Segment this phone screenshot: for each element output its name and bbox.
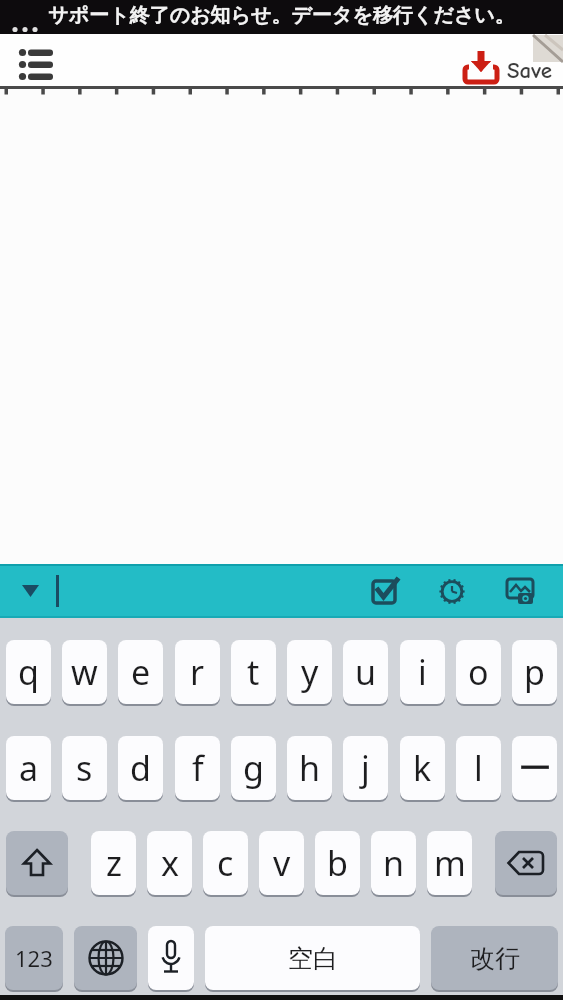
button[interactable] <box>22 584 40 598</box>
button[interactable]: u <box>343 640 388 704</box>
button[interactable]: e <box>118 640 163 704</box>
button[interactable] <box>495 831 557 895</box>
button[interactable]: q <box>6 640 51 704</box>
staticText: 改行 <box>470 943 520 974</box>
button[interactable]: t <box>231 640 276 704</box>
button[interactable]: b <box>315 831 360 895</box>
staticText: 空白 <box>288 943 338 974</box>
staticText: Save <box>507 57 552 83</box>
staticText: v <box>273 840 291 886</box>
staticText: w <box>71 649 98 695</box>
button[interactable] <box>18 46 56 78</box>
button[interactable]: サポート終了のお知らせ。データを移行ください。 <box>0 0 563 34</box>
staticText: p <box>524 649 545 695</box>
button[interactable] <box>505 578 535 604</box>
staticText: ー <box>518 747 552 790</box>
staticText: r <box>190 649 205 695</box>
button[interactable]: g <box>231 736 276 800</box>
button[interactable]: ー <box>512 736 557 800</box>
staticText: u <box>355 649 377 695</box>
button[interactable]: o <box>456 640 501 704</box>
staticText: f <box>192 745 204 791</box>
staticText: o <box>468 649 489 695</box>
button[interactable]: n <box>371 831 416 895</box>
staticText: d <box>130 745 151 791</box>
button[interactable]: r <box>175 640 220 704</box>
button[interactable]: d <box>118 736 163 800</box>
staticText: y <box>301 649 319 695</box>
button[interactable]: a <box>6 736 51 800</box>
staticText: h <box>299 745 321 791</box>
button[interactable]: c <box>203 831 248 895</box>
button[interactable] <box>6 831 68 895</box>
staticText: b <box>327 840 348 886</box>
button[interactable]: Save <box>465 51 552 83</box>
button[interactable]: 空白 <box>205 926 420 990</box>
staticText: j <box>361 745 370 791</box>
button[interactable]: s <box>62 736 107 800</box>
button[interactable] <box>74 926 137 990</box>
button[interactable]: w <box>62 640 107 704</box>
staticText: a <box>19 745 39 791</box>
staticText: c <box>217 840 234 886</box>
button[interactable]: z <box>91 831 136 895</box>
button[interactable]: p <box>512 640 557 704</box>
staticText: サポート終了のお知らせ。データを移行ください。 <box>48 3 515 28</box>
button[interactable]: f <box>175 736 220 800</box>
staticText: q <box>18 649 39 695</box>
staticText: 123 <box>15 943 53 973</box>
staticText: m <box>434 840 466 886</box>
button[interactable]: h <box>287 736 332 800</box>
button[interactable] <box>373 578 399 604</box>
button[interactable] <box>148 926 194 990</box>
button[interactable]: l <box>456 736 501 800</box>
button[interactable]: v <box>259 831 304 895</box>
staticText: l <box>474 745 483 791</box>
button[interactable]: 改行 <box>431 926 558 990</box>
button[interactable]: k <box>400 736 445 800</box>
button[interactable]: j <box>343 736 388 800</box>
button[interactable] <box>439 578 465 604</box>
button[interactable]: 123 <box>5 926 63 990</box>
button[interactable]: m <box>427 831 472 895</box>
staticText: z <box>106 840 122 886</box>
button[interactable]: x <box>147 831 192 895</box>
staticText: k <box>413 745 432 791</box>
button[interactable]: y <box>287 640 332 704</box>
staticText: n <box>383 840 405 886</box>
staticText: t <box>247 649 260 695</box>
staticText: e <box>131 649 151 695</box>
staticText: s <box>76 745 93 791</box>
staticText: g <box>243 745 264 791</box>
button[interactable]: i <box>400 640 445 704</box>
staticText: x <box>161 840 179 886</box>
staticText: i <box>418 649 427 695</box>
